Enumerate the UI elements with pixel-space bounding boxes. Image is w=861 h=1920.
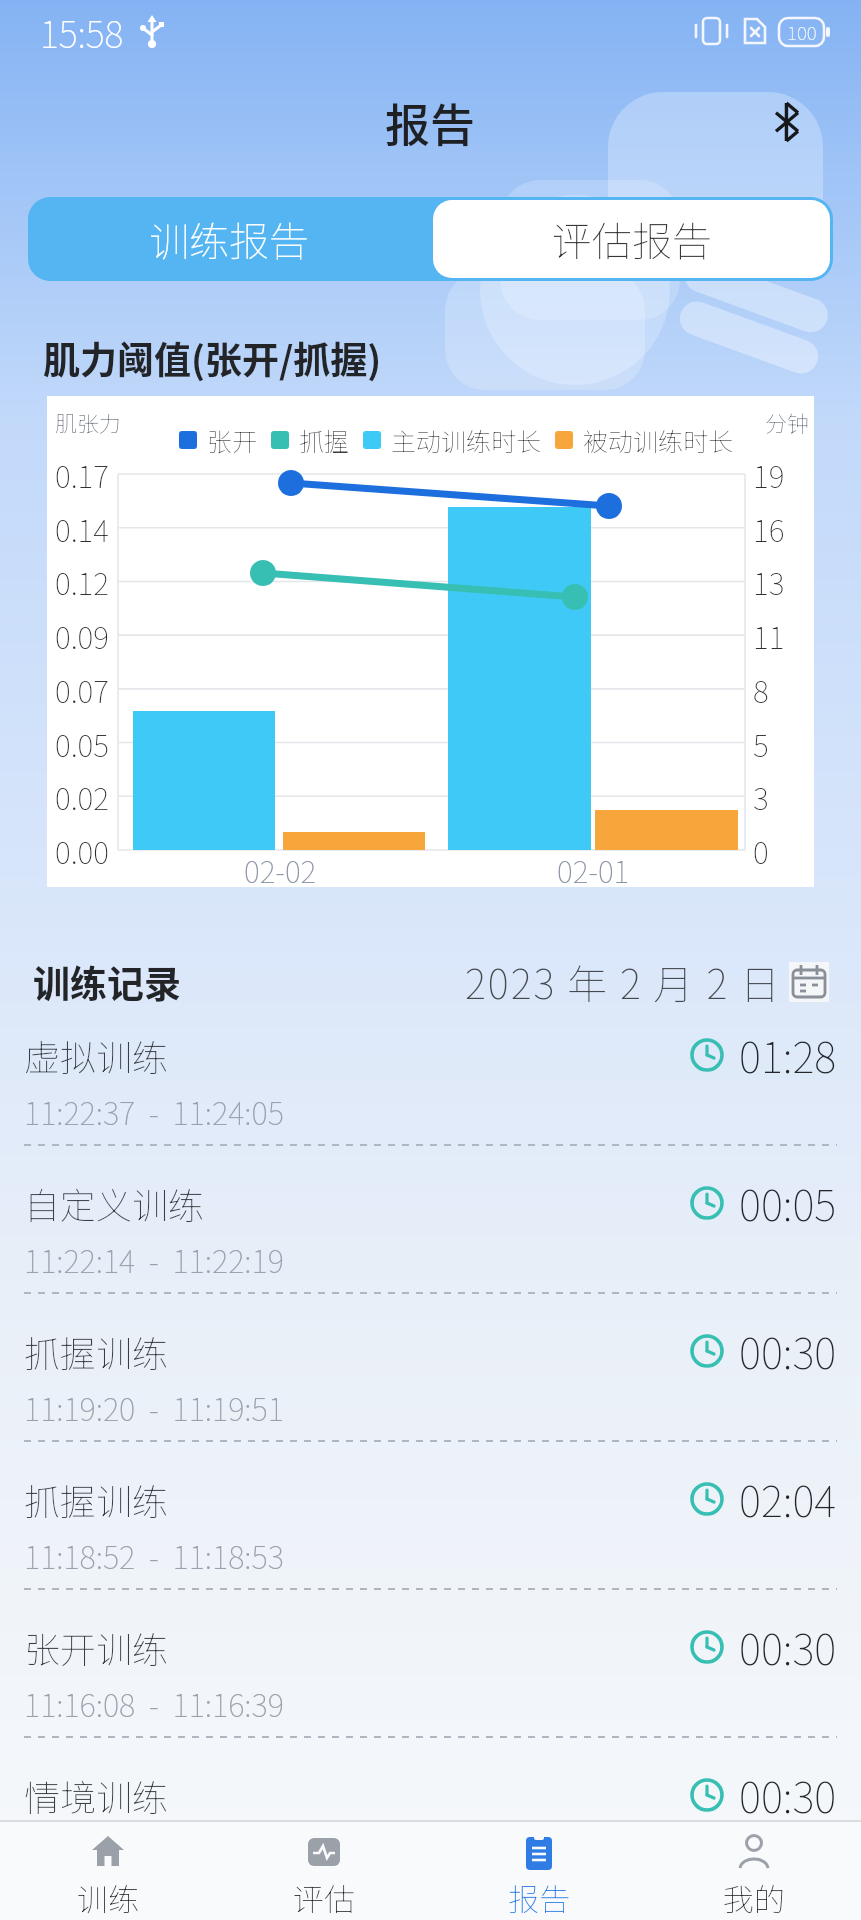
staticText: 张开训练 xyxy=(24,1621,169,1673)
staticText: 报告 xyxy=(385,90,476,155)
staticText: 情境训练 xyxy=(24,1769,169,1821)
staticText: 训练报告 xyxy=(149,210,309,268)
staticText: 抓握训练 xyxy=(24,1473,169,1525)
staticText: 19 xyxy=(753,453,785,495)
staticText: 02-01 xyxy=(557,848,630,891)
staticText: 00:30 xyxy=(739,1320,837,1381)
staticText: 训练 xyxy=(77,1875,139,1920)
staticText: 肌张力 xyxy=(55,406,122,438)
button[interactable]: 抓握训练 xyxy=(24,1310,837,1458)
staticText: 虚拟训练 xyxy=(24,1029,169,1081)
staticText: 00:05 xyxy=(739,1172,837,1233)
staticText: 11:14:00 - 11:14:31 xyxy=(24,1829,284,1874)
staticText: 16 xyxy=(753,507,785,549)
staticText: 训练记录 xyxy=(33,955,181,1009)
staticText: 我的 xyxy=(723,1875,785,1920)
staticText: 0.09 xyxy=(55,614,109,656)
button[interactable] xyxy=(773,102,801,142)
button[interactable]: 评估报告 xyxy=(433,200,830,278)
staticText: 5 xyxy=(753,722,769,764)
staticText: 0 xyxy=(753,829,769,871)
staticText: 分钟 xyxy=(765,406,810,438)
staticText: 张开 xyxy=(207,422,258,458)
staticText: 0.17 xyxy=(55,453,109,495)
button[interactable]: 评估 xyxy=(216,1822,431,1920)
staticText: 抓握 xyxy=(299,422,350,458)
staticText: 0.14 xyxy=(55,507,109,549)
staticText: 自定义训练 xyxy=(24,1177,205,1229)
staticText: 13 xyxy=(753,560,785,602)
staticText: 0.05 xyxy=(55,722,109,764)
staticText: 评估报告 xyxy=(552,210,712,268)
button[interactable]: 报告 xyxy=(431,1822,646,1920)
staticText: 11:16:08 - 11:16:39 xyxy=(24,1681,284,1726)
staticText: 01:28 xyxy=(739,1024,837,1085)
button[interactable] xyxy=(789,962,829,1002)
button[interactable]: 训练报告 xyxy=(28,197,430,281)
button[interactable]: 训练 xyxy=(0,1822,216,1920)
staticText: 8 xyxy=(753,668,769,710)
button[interactable]: 我的 xyxy=(646,1822,861,1920)
staticText: 00:30 xyxy=(739,1764,837,1825)
staticText: 0.02 xyxy=(55,775,109,817)
staticText: 3 xyxy=(753,775,769,817)
staticText: 2023 年 2 月 2 日 xyxy=(465,953,783,1011)
staticText: 00:30 xyxy=(739,1616,837,1677)
staticText: 0.00 xyxy=(55,829,109,871)
staticText: 主动训练时长 xyxy=(391,422,542,458)
staticText: 报告 xyxy=(508,1875,570,1920)
staticText: 11:18:52 - 11:18:53 xyxy=(24,1533,284,1578)
staticText: 11:22:37 - 11:24:05 xyxy=(24,1089,284,1134)
staticText: 被动训练时长 xyxy=(583,422,734,458)
staticText: 15:58 xyxy=(40,6,124,58)
staticText: 评估 xyxy=(293,1875,355,1920)
staticText: 02-02 xyxy=(244,848,317,891)
button[interactable]: 自定义训练 xyxy=(24,1162,837,1310)
button[interactable]: 张开训练 xyxy=(24,1606,837,1754)
staticText: 11 xyxy=(753,614,785,656)
button[interactable]: 抓握训练 xyxy=(24,1458,837,1606)
staticText: 11:19:20 - 11:19:51 xyxy=(24,1385,284,1430)
staticText: 11:22:14 - 11:22:19 xyxy=(24,1237,284,1282)
staticText: 100 xyxy=(787,18,817,46)
staticText: 0.07 xyxy=(55,668,109,710)
staticText: 肌力阈值(张开/抓握) xyxy=(43,331,382,385)
staticText: 抓握训练 xyxy=(24,1325,169,1377)
staticText: 02:04 xyxy=(739,1468,837,1529)
button[interactable]: 虚拟训练 xyxy=(24,1014,837,1162)
button[interactable]: 情境训练 xyxy=(24,1754,837,1902)
staticText: 0.12 xyxy=(55,560,109,602)
